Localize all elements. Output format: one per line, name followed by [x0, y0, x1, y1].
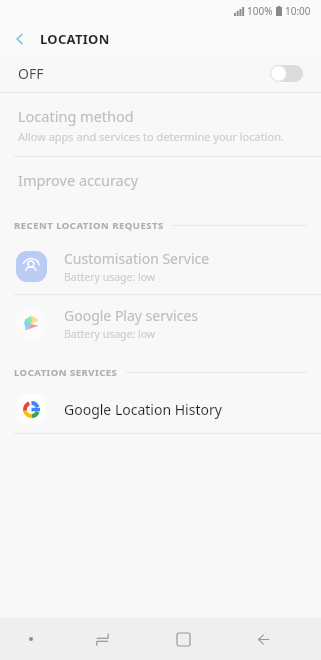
staticText: 100% — [247, 4, 273, 18]
staticText: LOCATION — [40, 30, 110, 48]
staticText: Google Location History — [64, 400, 222, 419]
staticText: Customisation Service — [64, 249, 210, 268]
button[interactable]: Google Location History — [0, 385, 321, 433]
button[interactable]: Google Play services — [0, 295, 321, 351]
staticText: OFF — [18, 64, 44, 83]
staticText: Improve accuracy — [18, 170, 139, 190]
staticText: Battery usage: low — [64, 270, 156, 284]
button[interactable]: Customisation Service — [0, 238, 321, 294]
button[interactable]: Recent apps — [62, 618, 143, 660]
button[interactable]: Improve accuracy — [0, 157, 321, 202]
button[interactable]: Locating method — [0, 93, 321, 156]
button[interactable]: Back — [0, 22, 40, 55]
button[interactable]: Back — [223, 618, 303, 660]
button[interactable]: Keyboard indicator — [0, 618, 62, 660]
button[interactable]: Home — [143, 618, 223, 660]
staticText: 10:00 — [285, 4, 311, 18]
staticText: LOCATION SERVICES — [14, 366, 118, 379]
staticText: Google Play services — [64, 306, 199, 325]
staticText: Locating method — [18, 106, 134, 126]
staticText: RECENT LOCATION REQUESTS — [14, 219, 164, 232]
staticText: Battery usage: low — [64, 327, 156, 341]
staticText: Allow apps and services to determine you… — [18, 129, 284, 144]
button[interactable]: OFF — [0, 55, 321, 92]
